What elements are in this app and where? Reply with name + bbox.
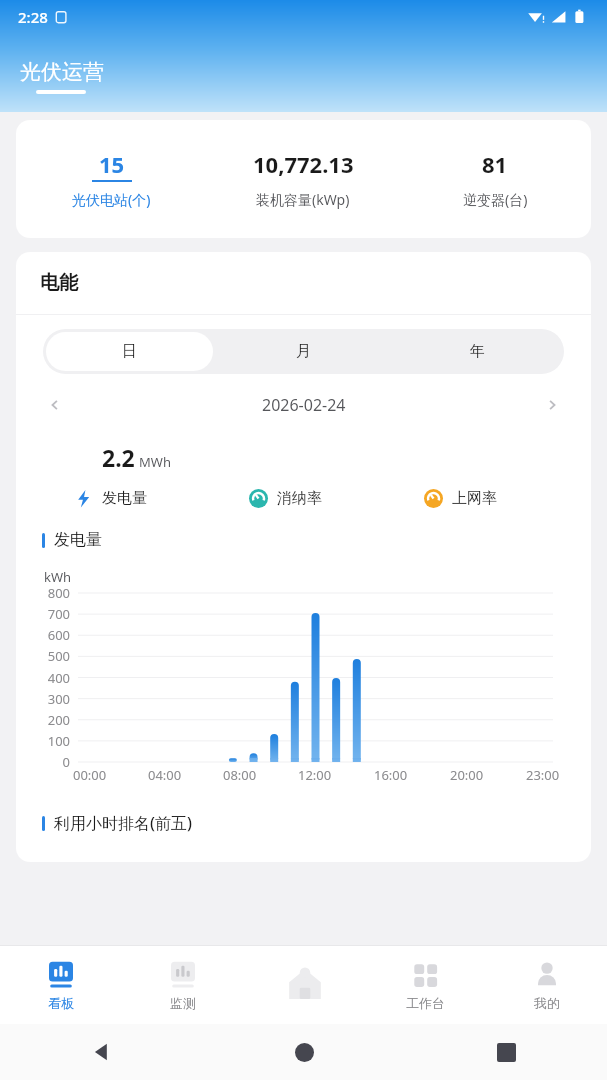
staticText: 0 <box>62 753 70 771</box>
staticText: 12:00 <box>298 766 332 784</box>
staticText: 发电量 <box>102 489 147 508</box>
staticText: 逆变器(台) <box>463 190 528 209</box>
button[interactable]: 10,772.13 <box>207 143 399 215</box>
staticText: 100 <box>47 732 70 750</box>
staticText: 监测 <box>170 995 196 1011</box>
button[interactable]: Home <box>203 1024 405 1080</box>
button[interactable]: Previous day <box>38 390 72 420</box>
staticText: 800 <box>47 584 70 602</box>
staticText: 00:00 <box>73 766 107 784</box>
button[interactable]: 工作台 Workbench <box>365 946 486 1024</box>
staticText: 08:00 <box>223 766 257 784</box>
staticText: 上网率 <box>452 489 497 508</box>
staticText: 700 <box>47 605 70 623</box>
staticText: 发电量 <box>54 530 102 550</box>
staticText: 月 <box>296 342 311 361</box>
button[interactable]: Back <box>0 1024 203 1080</box>
staticText: 04:00 <box>148 766 182 784</box>
staticText: 300 <box>47 690 70 708</box>
staticText: 500 <box>47 647 70 665</box>
button[interactable]: 年 <box>393 332 561 371</box>
staticText: 光伏运营 <box>20 59 104 85</box>
staticText: 10,772.13 <box>253 149 354 179</box>
staticText: 600 <box>47 626 70 644</box>
staticText: 15 <box>99 149 125 179</box>
button[interactable]: 月 <box>219 332 387 371</box>
button[interactable]: 消纳率 <box>221 487 396 510</box>
staticText: 16:00 <box>374 766 408 784</box>
button[interactable]: 我的 Profile <box>486 946 607 1024</box>
staticText: 电能 <box>40 271 78 295</box>
staticText: 2026-02-24 <box>262 394 346 416</box>
staticText: 工作台 <box>406 995 445 1011</box>
staticText: kWh <box>44 568 72 586</box>
button[interactable]: 监测 Monitoring <box>122 946 244 1024</box>
staticText: 日 <box>122 342 137 361</box>
staticText: 年 <box>470 342 485 361</box>
button[interactable]: Next day <box>535 390 569 420</box>
button[interactable]: 81 <box>399 143 591 215</box>
staticText: 看板 <box>48 995 74 1011</box>
button[interactable]: Home <box>244 946 365 1024</box>
button[interactable]: 日 <box>46 332 213 371</box>
button[interactable]: 上网率 <box>396 487 571 510</box>
staticText: 利用小时排名(前五) <box>54 812 192 834</box>
staticText: 20:00 <box>450 766 484 784</box>
staticText: 81 <box>482 149 508 179</box>
staticText: 23:00 <box>526 766 560 784</box>
staticText: 2.2 <box>102 442 135 473</box>
button[interactable]: 看板 Dashboard <box>0 946 122 1024</box>
button[interactable]: 15 <box>16 143 207 215</box>
staticText: MWh <box>139 453 171 471</box>
staticText: 光伏电站(个) <box>72 190 151 209</box>
staticText: 2:28 <box>18 7 48 27</box>
staticText: 我的 <box>534 995 560 1011</box>
staticText: 200 <box>47 711 70 729</box>
button[interactable]: 发电量 <box>46 487 221 510</box>
staticText: 400 <box>47 669 70 687</box>
staticText: 消纳率 <box>277 489 322 508</box>
staticText: 装机容量(kWp) <box>256 190 350 209</box>
button[interactable]: Recents <box>405 1024 607 1080</box>
